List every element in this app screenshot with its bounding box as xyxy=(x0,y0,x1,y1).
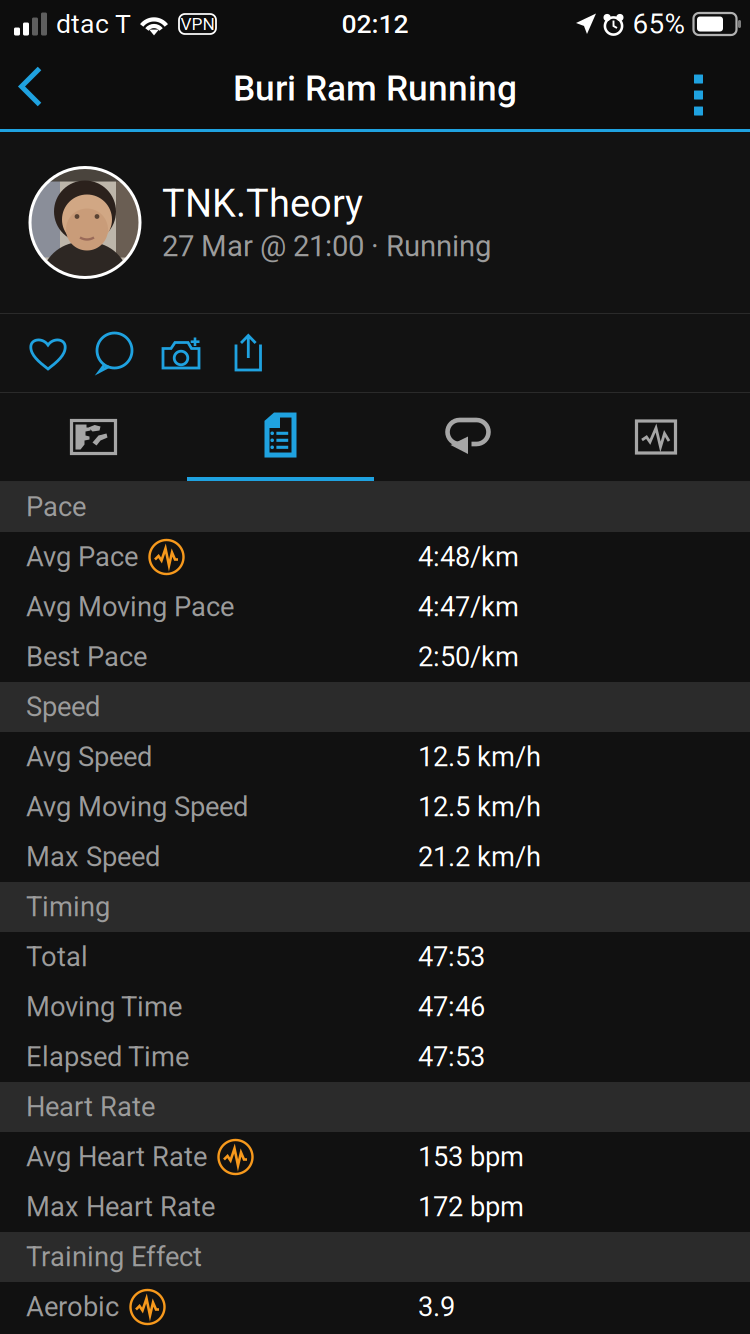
staticText: Aerobic xyxy=(26,1291,119,1323)
button[interactable]: Add photo xyxy=(148,314,215,392)
button[interactable]: Splits xyxy=(562,393,750,481)
staticText: 21.2 km/h xyxy=(418,841,541,873)
staticText: Avg Moving Speed xyxy=(26,791,248,823)
button[interactable]: Share xyxy=(215,314,282,392)
button[interactable]: Like xyxy=(15,314,81,392)
staticText: Heart Rate xyxy=(26,1091,155,1123)
staticText: Max Heart Rate xyxy=(26,1191,215,1223)
staticText: Buri Ram Running xyxy=(233,68,517,109)
staticText: Pace xyxy=(26,491,86,523)
staticText: TNK.Theory xyxy=(162,181,363,226)
staticText: 47:53 xyxy=(418,941,485,973)
staticText: 47:46 xyxy=(418,991,485,1023)
staticText: 172 bpm xyxy=(418,1191,524,1223)
staticText: 3.9 xyxy=(418,1291,455,1323)
staticText: Avg Moving Pace xyxy=(26,591,234,623)
button[interactable]: Comment xyxy=(81,314,148,392)
staticText: Timing xyxy=(26,891,110,923)
button[interactable]: More options xyxy=(666,52,731,125)
button[interactable]: Laps xyxy=(374,393,562,481)
staticText: Elapsed Time xyxy=(26,1041,189,1073)
staticText: 65% xyxy=(632,8,685,40)
button[interactable]: Map xyxy=(0,393,187,481)
staticText: 12.5 km/h xyxy=(418,741,541,773)
staticText: Best Pace xyxy=(26,641,147,673)
button[interactable]: Details xyxy=(187,393,374,481)
button[interactable]: Back xyxy=(4,52,57,125)
staticText: 4:48/km xyxy=(418,541,519,573)
staticText: 27 Mar @ 21:00 · Running xyxy=(162,229,491,263)
staticText: Avg Speed xyxy=(26,741,152,773)
staticText: 02:12 xyxy=(341,8,408,40)
staticText: Max Speed xyxy=(26,841,160,873)
staticText: Speed xyxy=(26,691,100,723)
staticText: Avg Heart Rate xyxy=(26,1141,207,1173)
staticText: Total xyxy=(26,941,88,973)
staticText: 12.5 km/h xyxy=(418,791,541,823)
staticText: 153 bpm xyxy=(418,1141,524,1173)
staticText: 4:47/km xyxy=(418,591,519,623)
staticText: dtac T xyxy=(56,8,131,40)
staticText: 2:50/km xyxy=(418,641,519,673)
staticText: 47:53 xyxy=(418,1041,485,1073)
staticText: VPN xyxy=(180,14,214,34)
staticText: Moving Time xyxy=(26,991,182,1023)
staticText: Avg Pace xyxy=(26,541,138,573)
staticText: Training Effect xyxy=(26,1241,202,1273)
